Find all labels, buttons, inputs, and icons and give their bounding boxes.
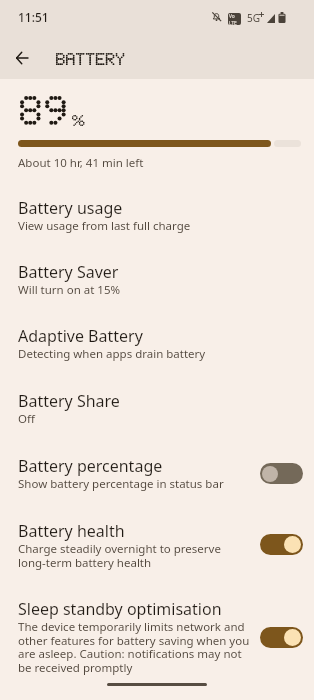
button[interactable]: Battery percentage [0, 451, 314, 492]
staticText: LTE [229, 20, 237, 25]
staticText: Will turn on at 15% [18, 282, 121, 298]
staticText: Off [18, 411, 35, 427]
staticText: other features for battery saving when y… [18, 633, 250, 649]
staticText: Battery health [18, 520, 125, 542]
staticText: Sleep standby optimisation [18, 598, 222, 620]
staticText: Charge steadily overnight to preserve [18, 541, 221, 557]
staticText: Battery usage [18, 197, 123, 219]
staticText: Battery percentage [18, 455, 163, 477]
button[interactable]: Battery Share [0, 386, 314, 427]
button[interactable]: Toggle on [260, 627, 303, 648]
staticText: Detecting when apps drain battery [18, 346, 206, 362]
button[interactable]: Battery Saver [0, 257, 314, 298]
button[interactable]: Back [4, 40, 40, 76]
staticText: About 10 hr, 41 min left [18, 155, 144, 171]
staticText: Battery Saver [18, 261, 119, 283]
staticText: The device temporarily limits network an… [18, 619, 245, 635]
staticText: 11:51 [18, 9, 49, 25]
staticText: Battery Share [18, 390, 120, 412]
staticText: Adaptive Battery [18, 325, 143, 347]
staticText: are asleep. Caution: notifications may n… [18, 646, 242, 662]
button[interactable]: Sleep standby optimisation [0, 594, 314, 676]
staticText: be received promptly [18, 660, 133, 676]
staticText: Show battery percentage in status bar [18, 476, 224, 492]
button[interactable]: Toggle off [260, 463, 303, 484]
staticText: long-term battery health [18, 555, 152, 571]
button[interactable]: Battery usage [0, 193, 314, 234]
button[interactable]: Toggle on [260, 534, 303, 555]
staticText: 5G [247, 11, 260, 25]
button[interactable]: Battery health [0, 516, 314, 571]
button[interactable]: Adaptive Battery [0, 321, 314, 362]
staticText: Vo [229, 13, 235, 20]
staticText: View usage from last full charge [18, 218, 191, 234]
